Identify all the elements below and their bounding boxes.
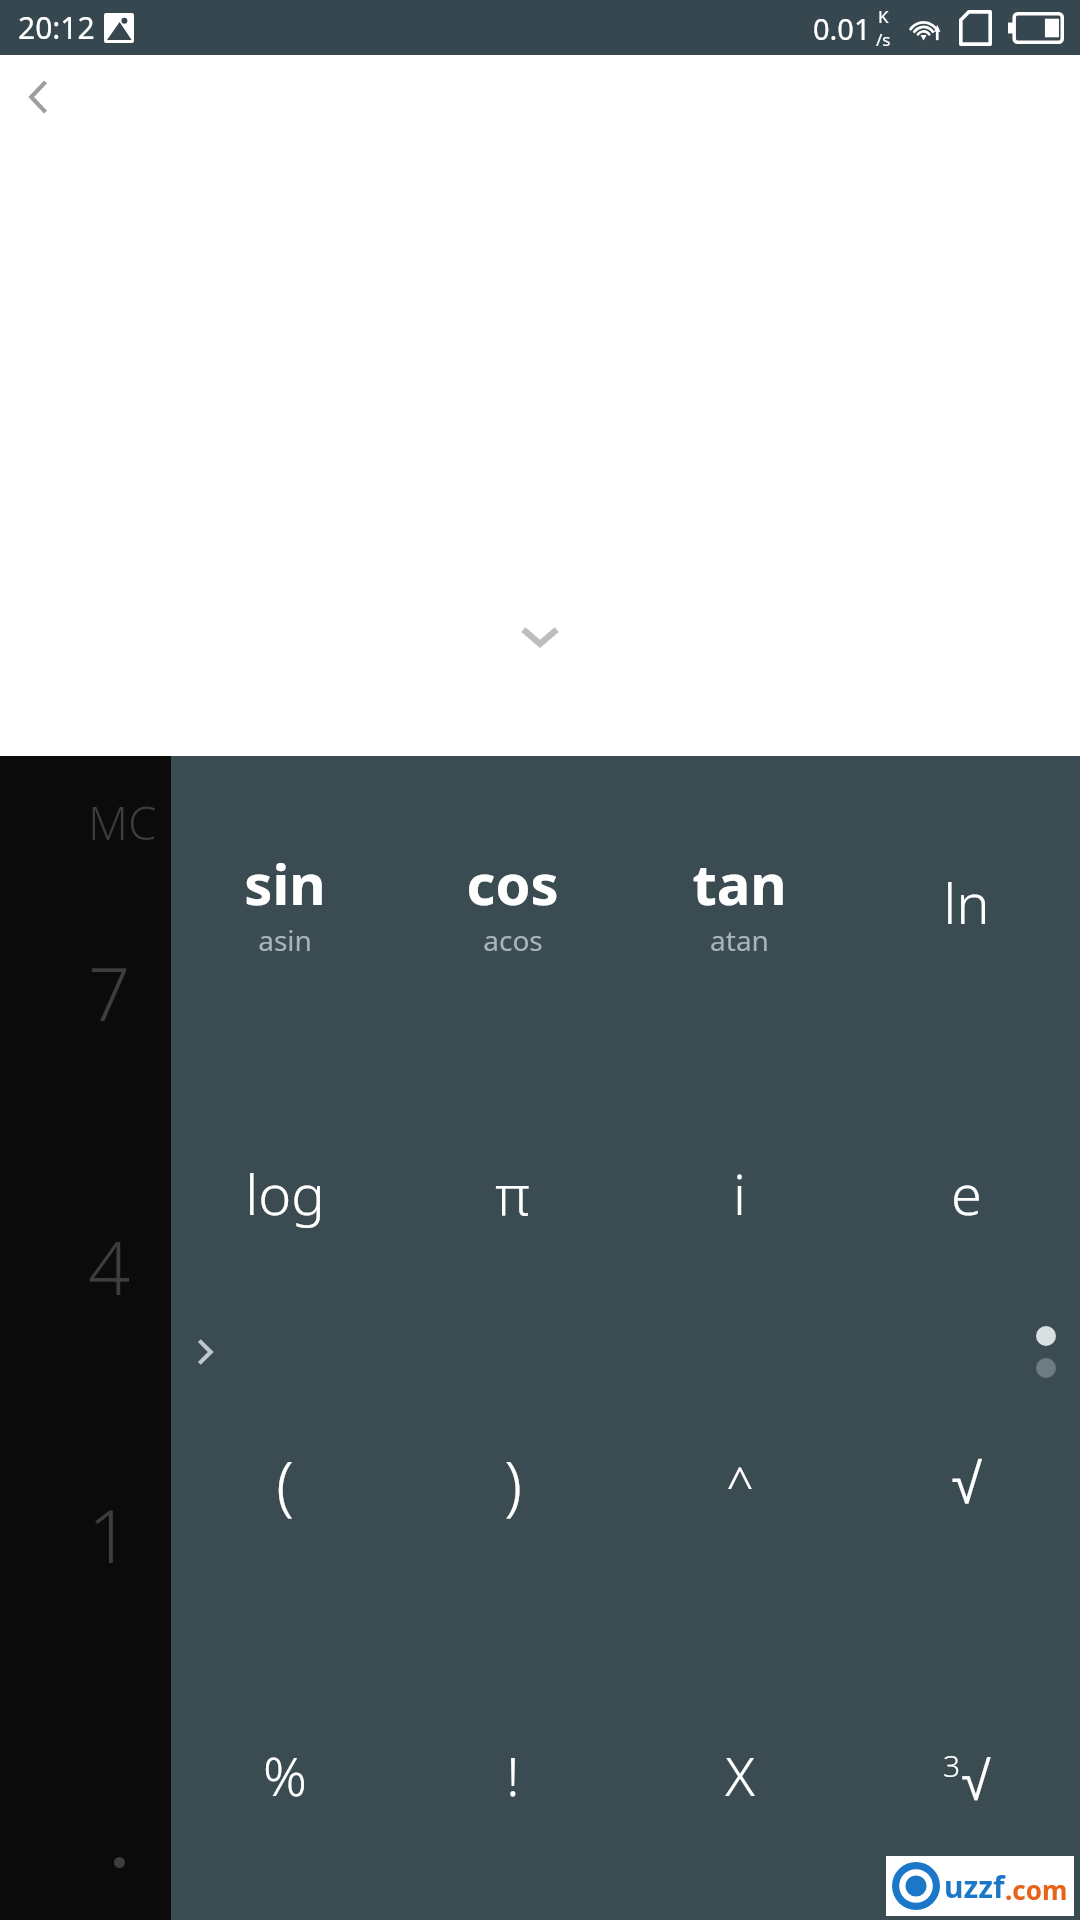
staticText: 20:12 bbox=[18, 7, 95, 48]
staticText: ) bbox=[504, 1440, 522, 1527]
button[interactable]: 3 bbox=[853, 1629, 1080, 1920]
staticText: √ bbox=[961, 1751, 991, 1811]
button[interactable]: ) bbox=[399, 1338, 626, 1629]
staticText: asin bbox=[258, 921, 312, 959]
button[interactable]: Collapse bbox=[497, 594, 583, 680]
button[interactable]: π bbox=[399, 1047, 626, 1338]
button[interactable]: % bbox=[171, 1629, 399, 1920]
staticText: tan bbox=[692, 845, 787, 921]
staticText: 0.01 bbox=[813, 9, 871, 48]
staticText: MC bbox=[88, 791, 157, 854]
staticText: ln bbox=[943, 864, 990, 940]
staticText: sin bbox=[244, 845, 326, 921]
staticText: X bbox=[725, 1738, 755, 1812]
staticText: cos bbox=[466, 845, 559, 921]
button[interactable]: tan bbox=[626, 756, 853, 1047]
staticText: /s bbox=[876, 28, 891, 51]
button[interactable]: √ bbox=[853, 1338, 1080, 1629]
button[interactable]: i bbox=[626, 1047, 853, 1338]
button[interactable]: Previous page bbox=[171, 1318, 239, 1386]
staticText: .com bbox=[1005, 1872, 1068, 1907]
button[interactable]: X bbox=[626, 1629, 853, 1920]
staticText: K bbox=[878, 5, 889, 28]
staticText: ^ bbox=[726, 1451, 754, 1516]
button[interactable]: e bbox=[853, 1047, 1080, 1338]
staticText: 1 bbox=[88, 1484, 131, 1585]
staticText: 7 bbox=[88, 942, 131, 1043]
staticText: ! bbox=[506, 1738, 520, 1812]
staticText: acos bbox=[483, 921, 543, 959]
button[interactable]: ! bbox=[399, 1629, 626, 1920]
staticText: ( bbox=[276, 1440, 294, 1527]
button[interactable]: cos bbox=[399, 756, 626, 1047]
staticText: i bbox=[733, 1155, 746, 1231]
button[interactable]: ( bbox=[171, 1338, 399, 1629]
staticText: atan bbox=[710, 921, 769, 959]
button[interactable]: sin bbox=[171, 756, 399, 1047]
staticText: e bbox=[951, 1155, 982, 1231]
staticText: log bbox=[245, 1155, 325, 1231]
staticText: √ bbox=[951, 1452, 982, 1515]
staticText: 4 bbox=[88, 1216, 131, 1317]
button[interactable]: ln bbox=[853, 756, 1080, 1047]
button[interactable]: ^ bbox=[626, 1338, 853, 1629]
staticText: π bbox=[495, 1155, 530, 1231]
staticText: 3 bbox=[943, 1745, 961, 1786]
staticText: % bbox=[263, 1738, 307, 1812]
button[interactable]: Back bbox=[2, 61, 74, 133]
button[interactable]: log bbox=[171, 1047, 399, 1338]
staticText: uzzf bbox=[944, 1866, 1005, 1907]
